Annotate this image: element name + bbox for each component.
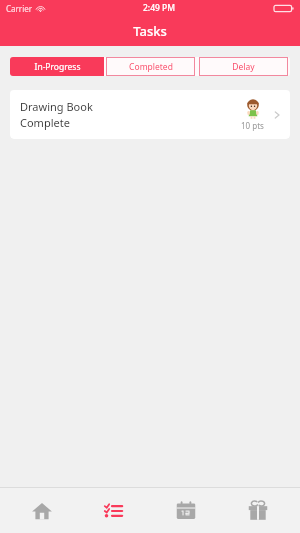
staticText: 10 pts xyxy=(241,120,264,131)
staticText: 2:49 PM xyxy=(143,2,176,14)
button[interactable]: Calendar xyxy=(156,488,216,533)
button[interactable]: Rewards xyxy=(228,488,288,533)
button[interactable]: Delay xyxy=(197,57,290,76)
other: Open task xyxy=(270,108,284,122)
staticText: In-Progress xyxy=(34,61,81,73)
staticText: Delay xyxy=(232,61,255,73)
staticText: Complete xyxy=(20,115,70,130)
staticText: Tasks xyxy=(133,22,167,40)
button[interactable]: Drawing Book xyxy=(10,90,290,139)
button[interactable]: In-Progress xyxy=(10,57,104,76)
button[interactable]: Completed xyxy=(104,57,197,76)
button[interactable]: Home xyxy=(12,488,72,533)
staticText: Completed xyxy=(129,61,173,73)
staticText: Drawing Book xyxy=(20,99,93,114)
button[interactable]: Tasks xyxy=(84,488,144,533)
staticText: Carrier xyxy=(6,3,33,14)
